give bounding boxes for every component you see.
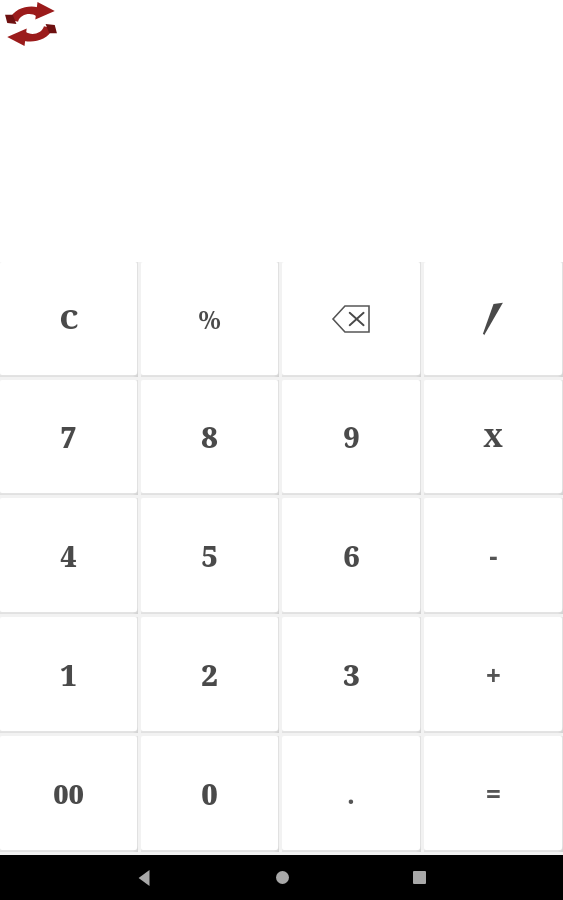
staticText: .	[347, 776, 355, 811]
button[interactable]: Recent apps	[395, 855, 443, 900]
button[interactable]: 9	[282, 380, 421, 495]
button[interactable]: 6	[282, 498, 421, 614]
button[interactable]: +	[424, 617, 563, 733]
staticText: C	[59, 300, 79, 337]
button[interactable]: 1	[0, 617, 138, 733]
staticText: +	[486, 657, 501, 692]
staticText: 9	[343, 417, 360, 456]
button[interactable]: 00	[0, 736, 138, 852]
staticText: 8	[201, 417, 218, 456]
staticText: 3	[343, 655, 360, 694]
staticText: 6	[343, 536, 360, 575]
button[interactable]: -	[424, 498, 563, 614]
button[interactable]: Swap units	[4, 1, 58, 47]
staticText: 1	[60, 655, 77, 694]
button[interactable]: Home	[258, 855, 306, 900]
staticText: 4	[60, 536, 77, 575]
button[interactable]: 4	[0, 498, 138, 614]
button[interactable]: Divide	[424, 262, 563, 377]
staticText: 2	[201, 655, 218, 694]
button[interactable]: 2	[141, 617, 279, 733]
staticText: X	[483, 420, 503, 454]
button[interactable]: Back	[121, 855, 169, 900]
staticText: =	[486, 776, 501, 811]
button[interactable]: 5	[141, 498, 279, 614]
button[interactable]: =	[424, 736, 563, 852]
button[interactable]: 0	[141, 736, 279, 852]
staticText: -	[489, 538, 498, 573]
button[interactable]: 8	[141, 380, 279, 495]
staticText: 5	[201, 536, 218, 575]
button[interactable]: C	[0, 262, 138, 377]
button[interactable]: 3	[282, 617, 421, 733]
staticText: 00	[53, 775, 84, 812]
button[interactable]: 7	[0, 380, 138, 495]
button[interactable]: .	[282, 736, 421, 852]
button[interactable]: Backspace	[282, 262, 421, 377]
staticText: 7	[60, 417, 77, 456]
button[interactable]: %	[141, 262, 279, 377]
staticText: %	[198, 302, 221, 336]
button[interactable]: X	[424, 380, 563, 495]
staticText: 0	[201, 774, 218, 813]
